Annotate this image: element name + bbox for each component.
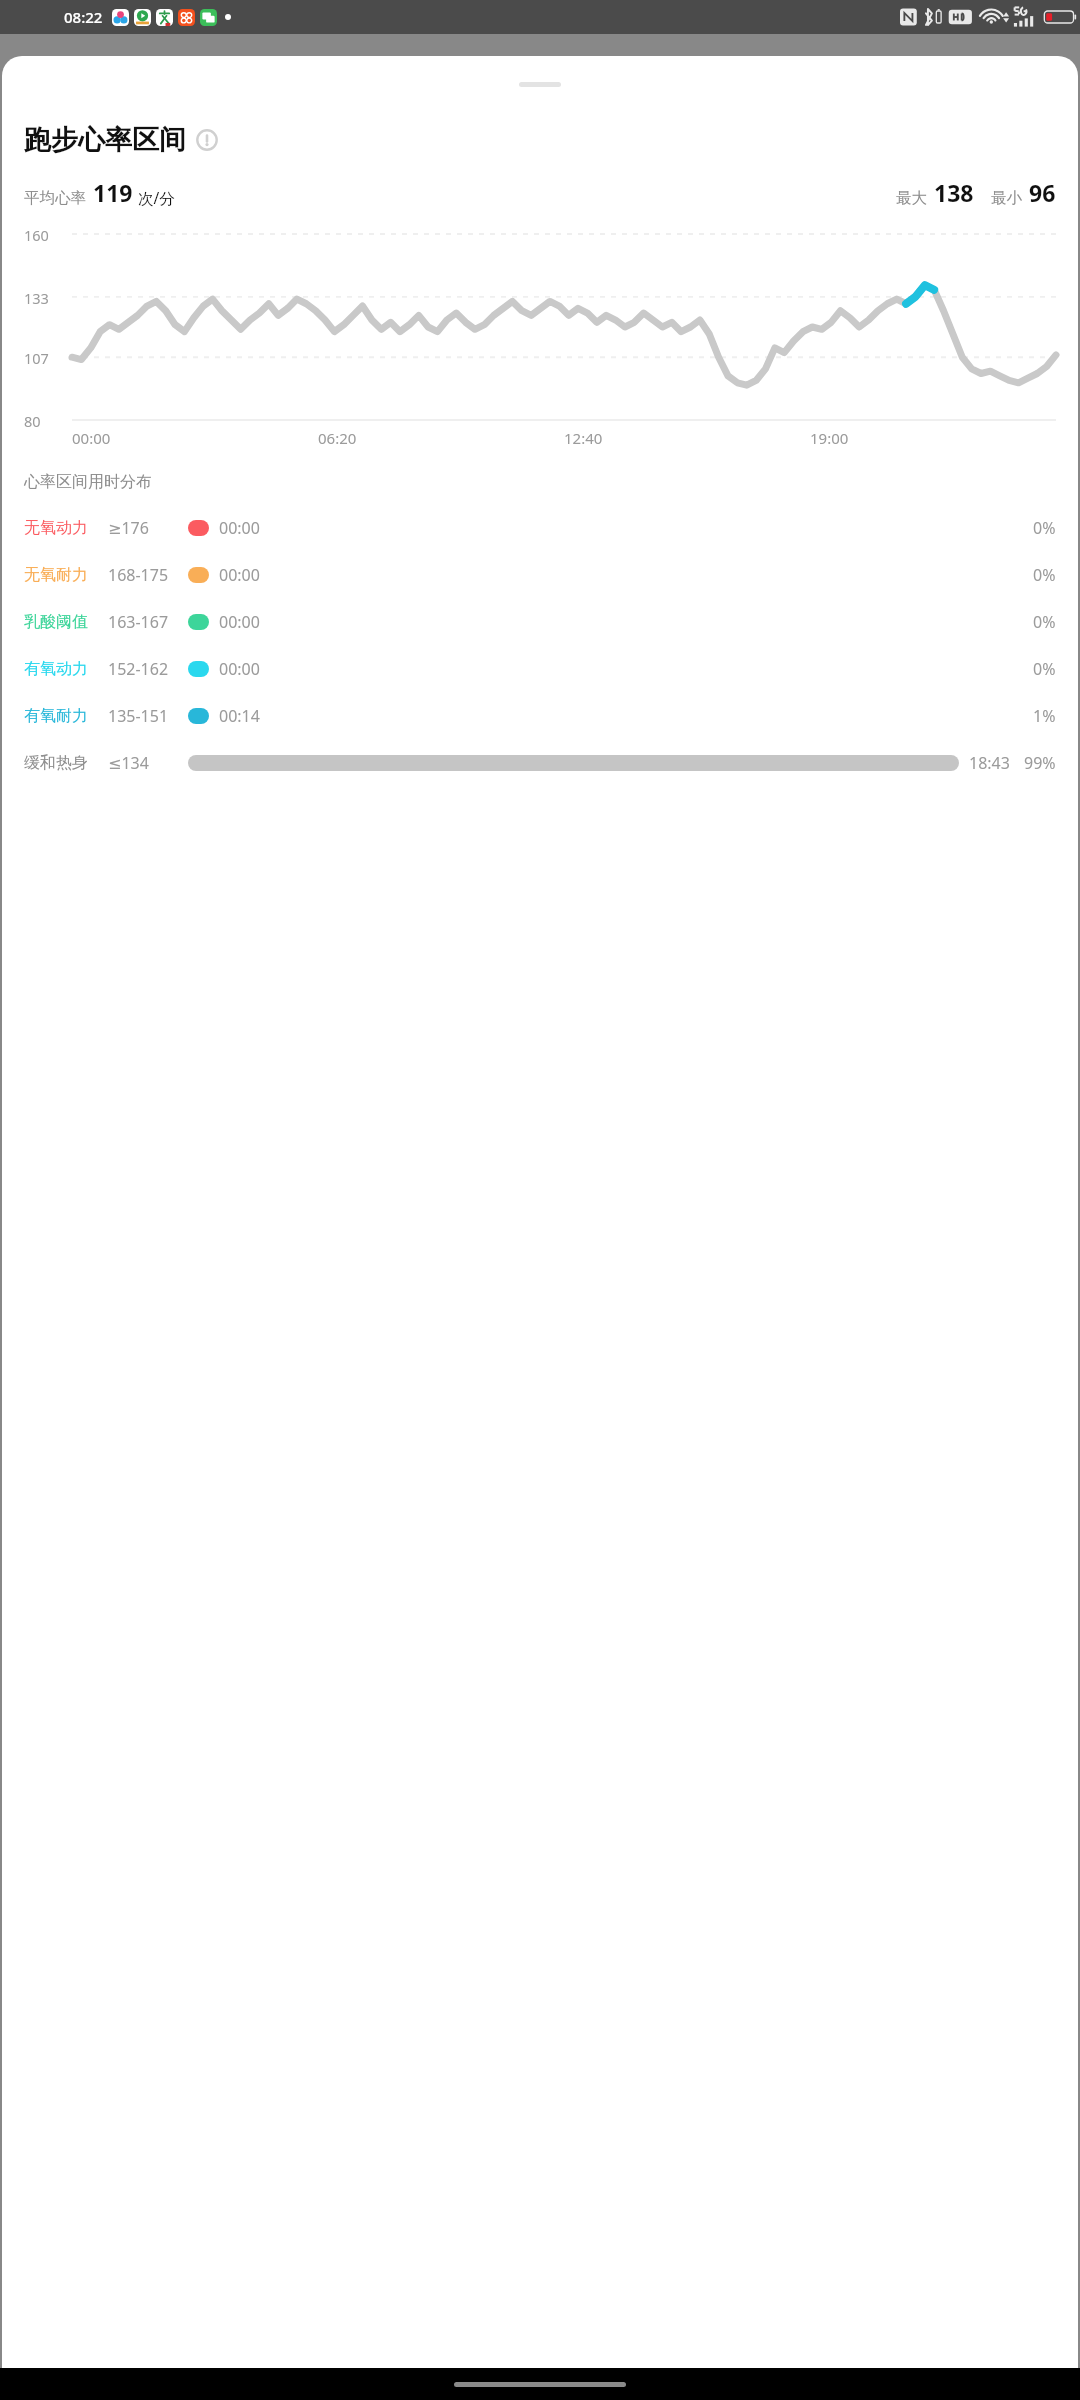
staticText: 乳酸阈值: [24, 612, 88, 632]
staticText: 133: [24, 288, 49, 308]
staticText: 有氧动力: [24, 659, 88, 679]
staticText: 00:00: [219, 517, 260, 539]
staticText: 163-167: [108, 611, 169, 633]
staticText: 最小: [991, 188, 1022, 208]
staticText: 0%: [1033, 517, 1056, 539]
staticText: 119: [93, 177, 133, 208]
staticText: 心率区间用时分布: [24, 472, 152, 492]
staticText: 12:40: [564, 428, 603, 448]
staticText: 跑步心率区间: [24, 123, 186, 157]
staticText: 135-151: [108, 705, 169, 727]
staticText: 1%: [1033, 705, 1056, 727]
staticText: 19:00: [810, 428, 849, 448]
staticText: 00:00: [72, 428, 111, 448]
staticText: ≥176: [108, 517, 149, 539]
button[interactable]: 缓和热身: [24, 739, 1056, 786]
button[interactable]: 无氧动力: [24, 504, 1056, 551]
staticText: 0%: [1033, 564, 1056, 586]
button[interactable]: 乳酸阈值: [24, 598, 1056, 645]
staticText: 06:20: [318, 428, 357, 448]
staticText: 无氧耐力: [24, 565, 88, 585]
staticText: 80: [24, 411, 41, 431]
staticText: 00:00: [219, 611, 260, 633]
staticText: 18:43: [969, 752, 1010, 774]
staticText: 99%: [1024, 752, 1056, 774]
staticText: 107: [24, 348, 49, 368]
staticText: 有氧耐力: [24, 706, 88, 726]
staticText: 160: [24, 225, 49, 245]
staticText: ≤134: [108, 752, 149, 774]
staticText: 无氧动力: [24, 518, 88, 538]
button[interactable]: 跑步心率区间: [24, 123, 1078, 157]
staticText: 0%: [1033, 611, 1056, 633]
staticText: 00:00: [219, 658, 260, 680]
staticText: 00:00: [219, 564, 260, 586]
staticText: 0%: [1033, 658, 1056, 680]
staticText: 次/分: [138, 187, 175, 208]
staticText: 00:14: [219, 705, 260, 727]
staticText: 96: [1029, 177, 1056, 208]
button[interactable]: 有氧动力: [24, 645, 1056, 692]
staticText: 168-175: [108, 564, 169, 586]
staticText: 最大: [896, 188, 927, 208]
staticText: 08:22: [64, 7, 103, 27]
staticText: 缓和热身: [24, 753, 88, 773]
button[interactable]: 有氧耐力: [24, 692, 1056, 739]
staticText: 平均心率: [24, 188, 86, 208]
button[interactable]: 说明: [196, 129, 218, 151]
staticText: 138: [934, 177, 974, 208]
staticText: 152-162: [108, 658, 169, 680]
button[interactable]: 无氧耐力: [24, 551, 1056, 598]
